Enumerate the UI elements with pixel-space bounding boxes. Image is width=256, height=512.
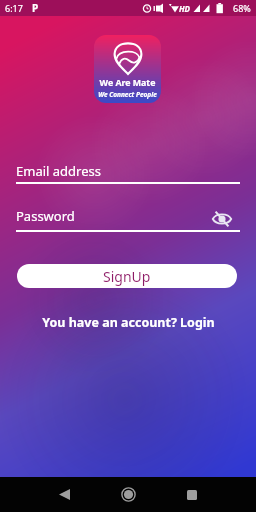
button[interactable]: [209, 209, 235, 229]
staticText: SignUp: [103, 267, 151, 286]
button[interactable]: Email address: [16, 160, 240, 184]
button[interactable]: Password: [16, 205, 240, 232]
staticText: We Are Mate: [94, 77, 161, 89]
button[interactable]: [48, 477, 80, 512]
staticText: P: [32, 1, 39, 15]
staticText: 6:17: [5, 2, 23, 14]
staticText: We Connect People: [94, 90, 161, 99]
staticText: HD: [179, 3, 191, 14]
staticText: Email address: [16, 162, 101, 180]
staticText: Password: [16, 207, 75, 225]
button[interactable]: [176, 477, 208, 512]
button[interactable]: [112, 477, 144, 512]
staticText: 68%: [233, 2, 251, 14]
button[interactable]: SignUp: [17, 264, 237, 288]
button[interactable]: You have an account? Login: [0, 313, 256, 331]
staticText: You have an account? Login: [42, 314, 215, 331]
